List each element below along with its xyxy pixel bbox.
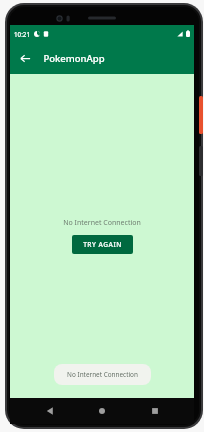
button[interactable]: TRY AGAIN (72, 235, 133, 254)
staticText: No Internet Connection (63, 218, 141, 228)
staticText: TRY AGAIN (83, 240, 122, 249)
staticText: No Internet Connection (67, 370, 138, 379)
button[interactable]: Back (13, 46, 37, 70)
button[interactable]: Home (89, 398, 115, 424)
button[interactable]: Recent apps (142, 398, 168, 424)
staticText: PokemonApp (43, 52, 105, 65)
staticText: 10:21 (14, 30, 30, 38)
button[interactable]: Back (37, 398, 63, 424)
button[interactable]: No Internet Connection (54, 364, 151, 385)
